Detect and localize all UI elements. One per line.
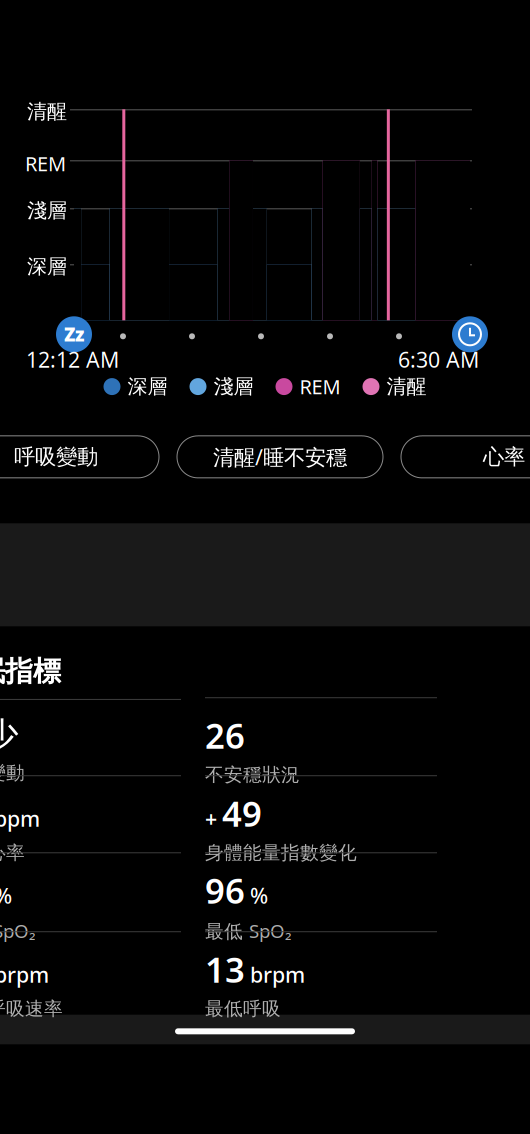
staticText: 淺層: [27, 198, 67, 223]
button[interactable]: 睡眠分數: [0, 130, 265, 190]
staticText: 睡眠分數: [82, 143, 182, 174]
staticText: +: [205, 804, 217, 832]
staticText: 12:12 AM: [26, 345, 119, 374]
staticText: %: [250, 881, 268, 910]
staticText: brpm: [0, 960, 49, 988]
staticText: 清醒/睡不安穩: [213, 443, 347, 471]
staticText: REM: [299, 373, 340, 400]
staticText: brpm: [250, 960, 305, 988]
button[interactable]: 心率: [401, 436, 530, 478]
staticText: 很少: [0, 714, 19, 756]
staticText: %: [0, 881, 12, 910]
staticText: 49: [222, 790, 262, 836]
staticText: 睡眠教練: [347, 143, 447, 174]
staticText: Zz: [64, 322, 84, 347]
staticText: 呼吸變動: [0, 761, 25, 784]
staticText: REM: [25, 150, 66, 177]
staticText: 清醒: [386, 374, 426, 399]
staticText: 身體能量指數變化: [205, 841, 357, 864]
staticText: 96: [205, 867, 245, 913]
staticText: 清醒: [27, 99, 67, 124]
staticText: 不安穩狀況: [205, 763, 300, 786]
staticText: 平均 SpO₂: [0, 918, 36, 943]
staticText: 最低 SpO₂: [205, 918, 292, 943]
button[interactable]: 睡眠教練: [265, 130, 530, 190]
staticText: 心率: [483, 444, 525, 470]
staticText: 平均呼吸速率: [0, 997, 63, 1020]
staticText: 淺層: [213, 374, 253, 399]
staticText: 26: [205, 712, 245, 758]
staticText: 呼吸變動: [14, 444, 98, 470]
staticText: 6:30 AM: [398, 345, 479, 374]
staticText: 深層: [127, 374, 167, 399]
staticText: 睡眠指標: [0, 654, 61, 689]
staticText: bpm: [0, 804, 40, 832]
button[interactable]: 呼吸變動: [0, 436, 159, 478]
staticText: 靜止心率: [0, 841, 25, 864]
button[interactable]: 清醒/睡不安穩: [177, 436, 383, 478]
staticText: 深層: [27, 254, 67, 279]
staticText: 13: [205, 946, 245, 992]
staticText: 最低呼吸: [205, 997, 281, 1020]
